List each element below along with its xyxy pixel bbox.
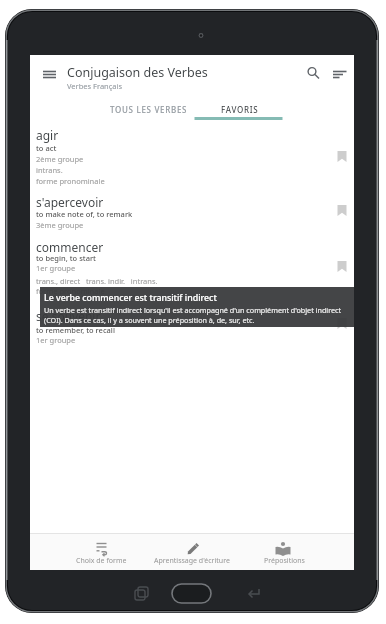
button[interactable]: [57, 534, 147, 570]
staticText: Le verbe commencer est transitif indirec…: [44, 292, 217, 304]
staticText: forme pronominale: [36, 176, 105, 186]
staticText: 1er groupe: [36, 335, 76, 345]
staticText: to begin, to start: [36, 253, 96, 263]
staticText: Aprentissage d'écriture: [154, 556, 230, 566]
staticText: to remember, to recall: [36, 325, 115, 335]
button[interactable]: [147, 534, 237, 570]
staticText: FAVORIS: [221, 104, 259, 115]
button[interactable]: [30, 194, 354, 238]
staticText: se souvenir: [36, 308, 101, 324]
staticText: trans., direct trans. indir. intrans.: [36, 276, 158, 286]
staticText: to make note of, to remark: [36, 209, 133, 219]
staticText: intrans.: [36, 165, 63, 175]
button[interactable]: TOUS LES VERBES: [104, 97, 193, 121]
staticText: Choix de forme: [76, 556, 127, 566]
staticText: forme pronominale: [36, 286, 105, 296]
staticText: Conjugaison des Verbes: [67, 64, 208, 81]
staticText: (COI). Dans ce cas, il y a souvent une p…: [44, 315, 255, 325]
staticText: commencer: [36, 239, 104, 255]
staticText: Prépositions: [264, 556, 305, 566]
button[interactable]: [237, 534, 327, 570]
staticText: 1er groupe: [36, 263, 76, 273]
staticText: 2ème groupe: [36, 154, 84, 164]
staticText: agir: [36, 127, 59, 143]
staticText: TOUS LES VERBES: [110, 104, 188, 115]
staticText: to act: [36, 143, 57, 153]
staticText: s'apercevoir: [36, 194, 104, 210]
staticText: Verbes Français: [67, 81, 123, 91]
button[interactable]: [30, 238, 354, 294]
button[interactable]: FAVORIS: [195, 97, 284, 121]
button[interactable]: [30, 55, 70, 95]
staticText: Un verbe est transitif indirect lorsqu'i…: [44, 305, 342, 315]
button[interactable]: [30, 121, 354, 194]
staticText: 3ème groupe: [36, 220, 84, 230]
